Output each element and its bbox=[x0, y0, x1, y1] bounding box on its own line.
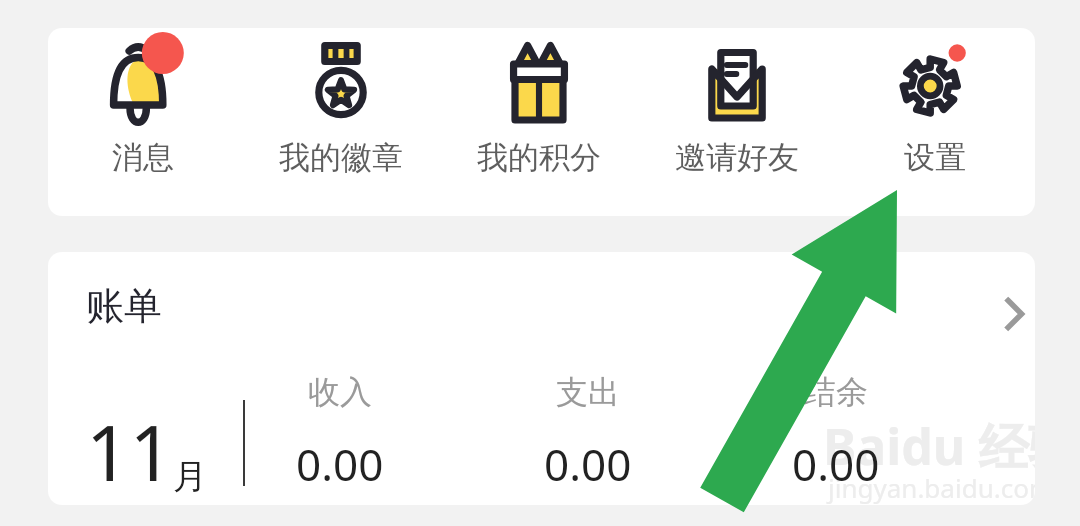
staticText: 11 bbox=[86, 400, 173, 504]
staticText: 我的徽章 bbox=[279, 138, 403, 177]
staticText: Baidu 经验 bbox=[823, 412, 1035, 480]
staticText: 结余 bbox=[804, 372, 868, 412]
staticText: 我的积分 bbox=[477, 138, 601, 177]
staticText: 0.00 bbox=[792, 434, 880, 494]
staticText: 账单 bbox=[86, 282, 162, 330]
staticText: 月 bbox=[173, 455, 207, 498]
staticText: 支出 bbox=[556, 372, 620, 412]
button[interactable]: 我的积分 bbox=[444, 34, 634, 210]
button[interactable]: 消息 bbox=[48, 34, 238, 210]
staticText: 消息 bbox=[112, 138, 174, 177]
button[interactable]: 我的徽章 bbox=[246, 34, 436, 210]
button[interactable]: 邀请好友 bbox=[642, 34, 832, 210]
staticText: 邀请好友 bbox=[675, 138, 799, 177]
other: More bbox=[988, 286, 1035, 342]
staticText: 0.00 bbox=[296, 434, 384, 494]
staticText: jingyan.baidu.com bbox=[828, 470, 1035, 505]
staticText: 收入 bbox=[308, 372, 372, 412]
staticText: 0.00 bbox=[544, 434, 632, 494]
button[interactable]: 设置 bbox=[840, 34, 1030, 210]
staticText: 设置 bbox=[904, 138, 966, 177]
button[interactable]: 账单 bbox=[48, 252, 1035, 362]
